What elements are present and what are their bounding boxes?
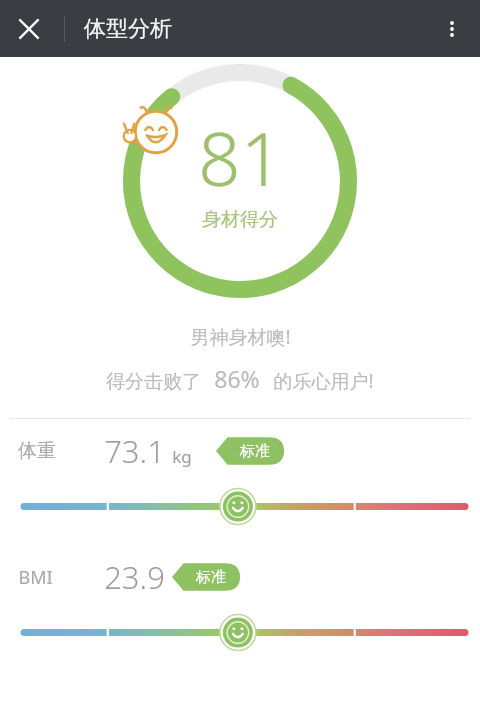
staticText: kg (172, 445, 192, 468)
staticText: 的乐心用户! (273, 368, 374, 394)
button[interactable]: 标准 (172, 562, 240, 592)
button[interactable]: More options (423, 0, 480, 57)
staticText: 86% (214, 363, 260, 394)
staticText: BMI (18, 565, 53, 590)
button[interactable]: Close (0, 0, 57, 57)
staticText: 73.1 (104, 430, 165, 472)
staticText: 标准 (196, 568, 226, 587)
staticText: 23.9 (104, 556, 165, 598)
button[interactable]: 标准 (216, 436, 284, 466)
staticText: 身材得分 (202, 208, 278, 232)
staticText: 81 (198, 107, 283, 208)
staticText: 标准 (240, 442, 270, 461)
staticText: 体重 (18, 439, 56, 463)
staticText: 得分击败了 (106, 370, 201, 394)
staticText: 体型分析 (84, 15, 172, 43)
staticText: 男神身材噢! (190, 324, 291, 350)
